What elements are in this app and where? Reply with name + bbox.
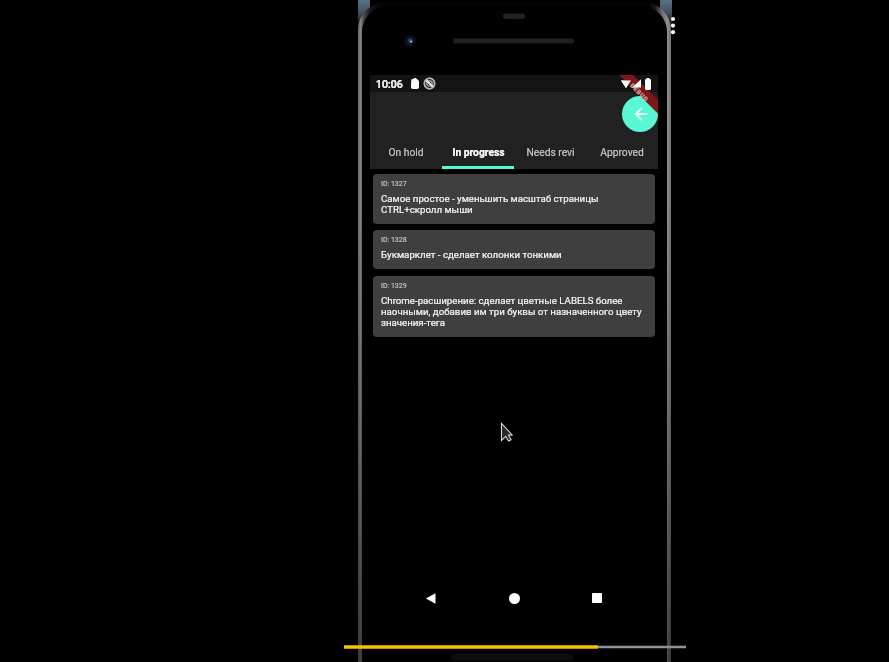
staticText: Букмарклет - сделает колонки тонкими bbox=[381, 249, 562, 260]
staticText: 10:06 bbox=[376, 78, 403, 90]
button[interactable]: Needs revi bbox=[514, 121, 586, 169]
staticText: Approved bbox=[600, 146, 644, 158]
button[interactable]: Approved bbox=[586, 121, 658, 169]
button[interactable]: More options bbox=[668, 14, 679, 38]
staticText: Chrome-расширение: сделает цветные LABEL… bbox=[381, 295, 647, 328]
staticText: ID: 1329 bbox=[381, 282, 407, 290]
staticText: ID: 1327 bbox=[381, 180, 407, 188]
staticText: Needs revi bbox=[526, 146, 575, 158]
button[interactable]: Home bbox=[497, 581, 531, 615]
button[interactable]: On hold bbox=[370, 121, 442, 169]
button[interactable]: Back bbox=[413, 581, 447, 615]
button[interactable]: ID: 1329 bbox=[373, 276, 655, 337]
button[interactable]: Back bbox=[622, 96, 658, 132]
staticText: In progress bbox=[452, 146, 505, 158]
button[interactable]: ID: 1327 bbox=[373, 174, 655, 224]
staticText: On hold bbox=[388, 146, 424, 158]
button[interactable]: Recent apps bbox=[580, 581, 614, 615]
staticText: Самое простое - уменьшить масштаб страни… bbox=[381, 193, 647, 215]
staticText: 10:06 bbox=[376, 78, 403, 90]
staticText: DEBUG bbox=[629, 81, 651, 103]
button[interactable]: In progress bbox=[442, 121, 514, 169]
button[interactable]: ID: 1328 bbox=[373, 230, 655, 269]
staticText: ID: 1328 bbox=[381, 236, 407, 244]
